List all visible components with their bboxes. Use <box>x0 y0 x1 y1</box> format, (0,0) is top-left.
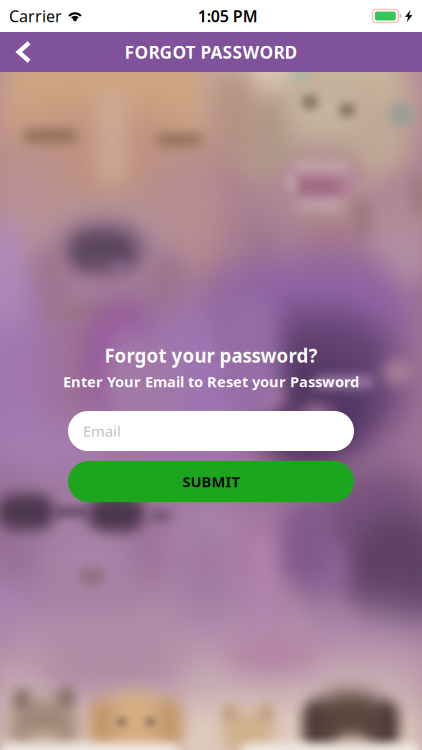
staticText: Carrier <box>9 5 62 27</box>
staticText: Email <box>83 421 121 441</box>
staticText: SUBMIT <box>182 472 239 491</box>
staticText: Forgot your password? <box>104 343 317 368</box>
staticText: Enter Your Email to Reset your Password <box>63 372 359 391</box>
button[interactable]: SUBMIT <box>68 461 354 502</box>
staticText: FORGOT PASSWORD <box>124 40 297 63</box>
staticText: 1:05 PM <box>198 5 258 27</box>
button[interactable]: Back <box>0 32 48 72</box>
